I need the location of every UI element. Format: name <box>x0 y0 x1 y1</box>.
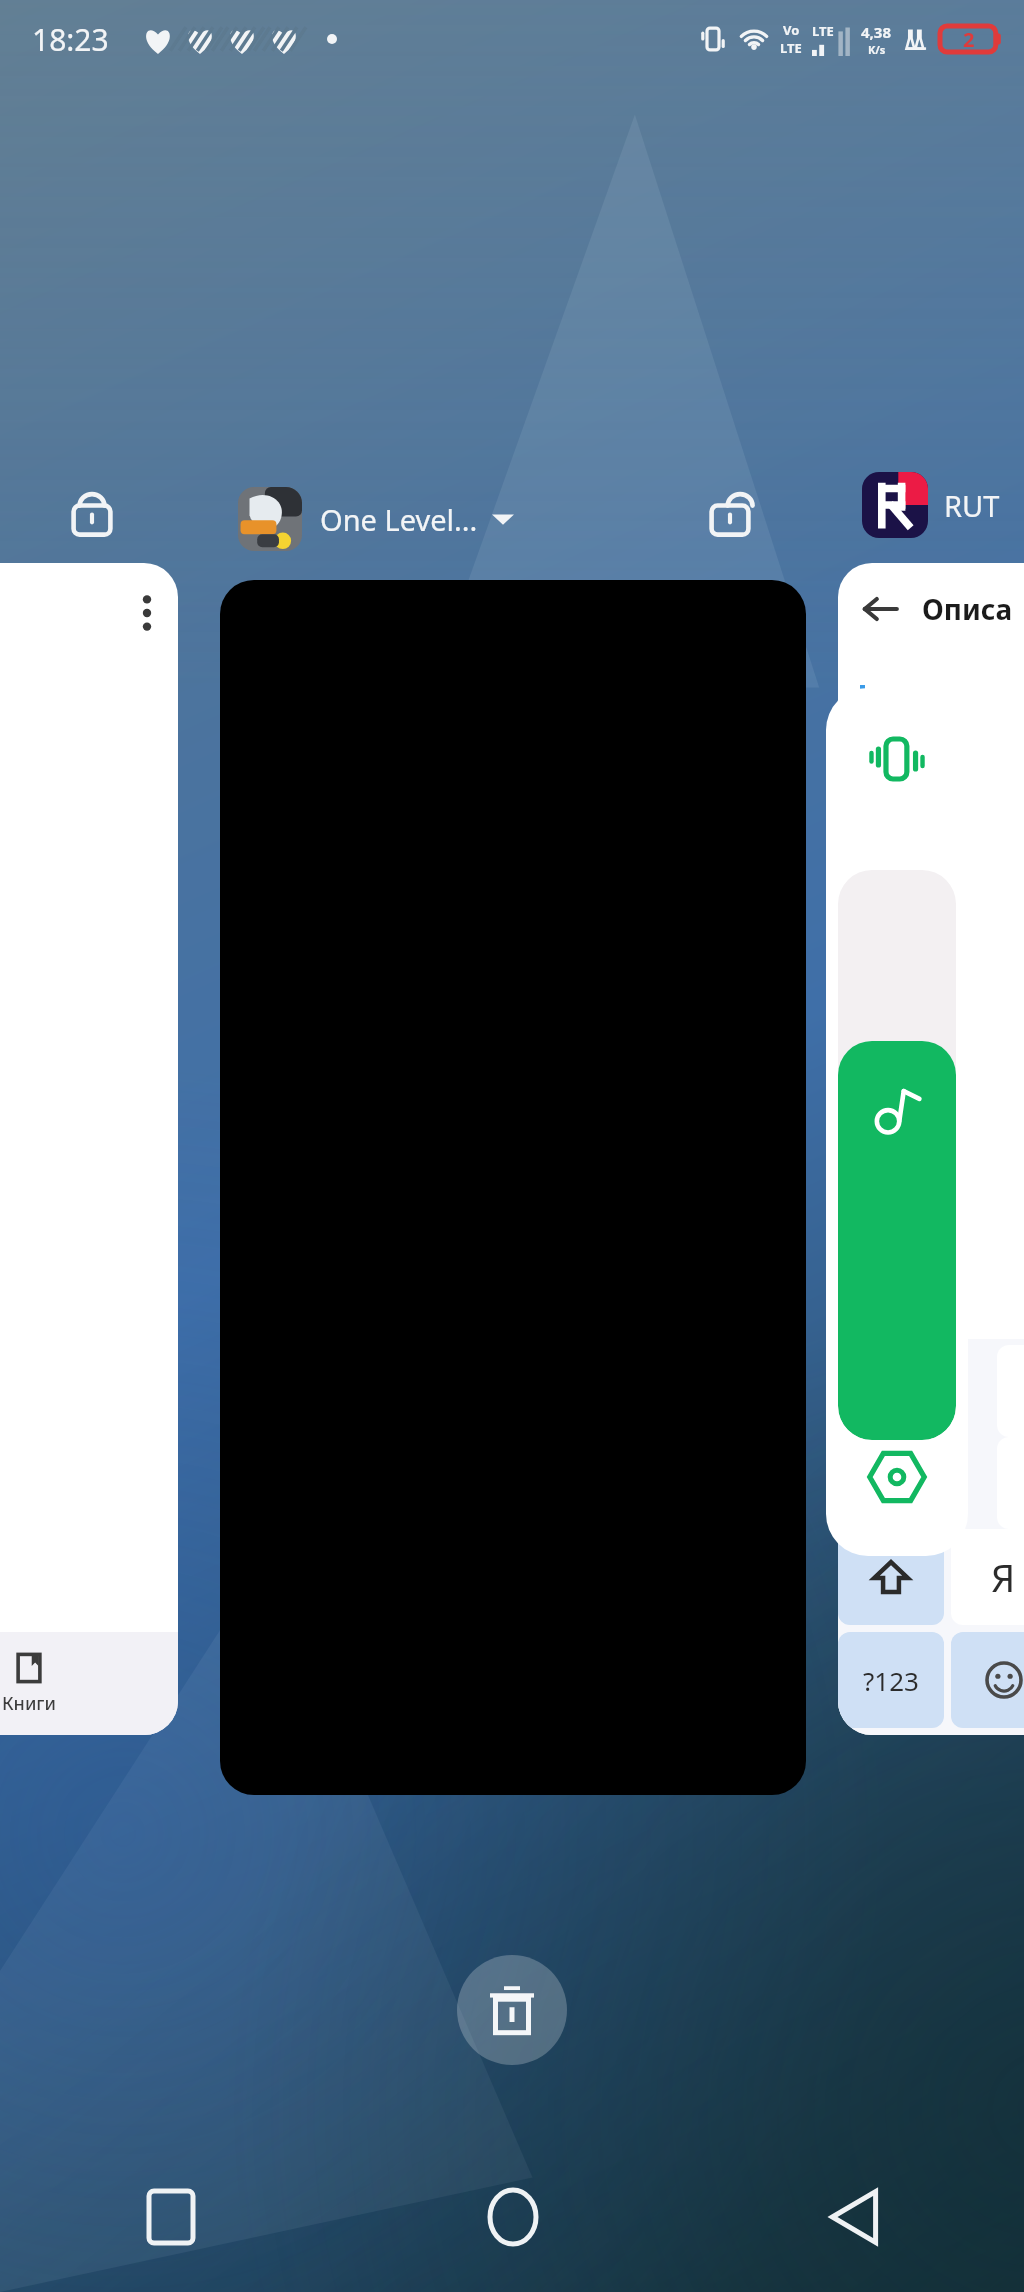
button[interactable]: Я <box>951 1529 1024 1625</box>
button[interactable]: One Level... <box>238 486 514 552</box>
button[interactable] <box>838 1529 944 1625</box>
button[interactable]: Lock app <box>60 478 124 542</box>
button[interactable]: Sound settings <box>858 1438 936 1516</box>
staticText: One Level... <box>320 500 478 539</box>
button[interactable] <box>951 1632 1024 1728</box>
button[interactable]: Back <box>838 563 1024 1735</box>
staticText: Vo <box>783 21 800 39</box>
staticText: ?123 <box>863 1663 919 1698</box>
staticText: 4,38 <box>861 22 892 42</box>
staticText: LTE <box>812 22 834 40</box>
staticText: RUT <box>944 486 1000 525</box>
staticText: 2 <box>963 26 975 53</box>
button[interactable]: Back <box>683 2142 1024 2292</box>
button[interactable]: Recent apps <box>0 2142 342 2292</box>
staticText: K/s <box>868 42 886 57</box>
button[interactable]: Media volume <box>838 870 956 1440</box>
button[interactable]: Back <box>860 589 900 629</box>
staticText: LTE <box>780 39 802 57</box>
button[interactable]: Clear all recent apps <box>457 1955 567 2065</box>
button[interactable] <box>220 580 806 1795</box>
button[interactable]: Unlock app <box>698 478 762 542</box>
button[interactable]: RUT <box>862 470 1000 540</box>
button[interactable]: Книги <box>0 1632 178 1735</box>
button[interactable]: Книги <box>0 563 178 1735</box>
staticText: Я <box>991 1551 1016 1603</box>
staticText: 18:23 <box>32 19 109 60</box>
button[interactable]: ?123 <box>838 1632 944 1728</box>
button[interactable]: Home <box>342 2142 683 2292</box>
button[interactable]: Ringer mode: vibrate <box>860 722 934 796</box>
staticText: Описа <box>922 590 1013 628</box>
staticText: Книги <box>2 1691 56 1716</box>
